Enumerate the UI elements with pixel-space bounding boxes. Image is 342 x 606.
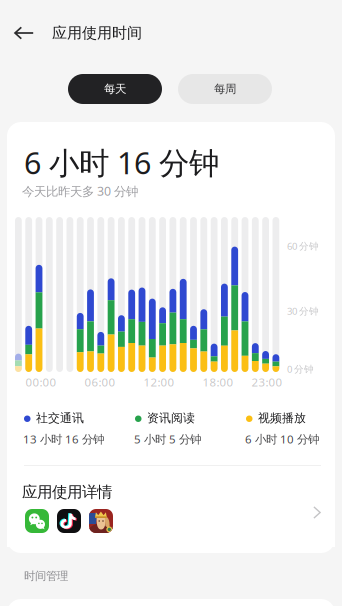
staticText: 社交通讯 — [36, 410, 84, 425]
staticText: 60 分钟 — [287, 239, 319, 253]
staticText: 应用使用时间 — [52, 23, 142, 42]
staticText: 00:00 — [25, 374, 56, 390]
staticText: 应用使用详情 — [22, 482, 112, 502]
staticText: 18:00 — [202, 374, 233, 390]
staticText: 23:00 — [251, 374, 282, 390]
staticText: 0 分钟 — [287, 362, 314, 376]
staticText: 视频播放 — [258, 410, 306, 425]
staticText: 6 小时 10 分钟 — [245, 431, 319, 447]
staticText: 13 小时 16 分钟 — [23, 431, 104, 447]
button[interactable]: 每天 — [68, 74, 162, 104]
button[interactable]: Back — [5, 14, 43, 52]
staticText: 5 小时 5 分钟 — [134, 431, 201, 447]
staticText: 6 小时 16 分钟 — [24, 142, 219, 183]
staticText: 每天 — [104, 82, 126, 96]
button[interactable]: 每周 — [178, 74, 272, 104]
staticText: 30 分钟 — [287, 304, 319, 318]
staticText: 今天比昨天多 30 分钟 — [22, 183, 138, 199]
staticText: 时间管理 — [24, 569, 68, 583]
staticText: 资讯阅读 — [147, 410, 195, 425]
staticText: 每周 — [214, 82, 236, 96]
staticText: 12:00 — [143, 374, 174, 390]
button[interactable]: 应用使用详情 — [7, 477, 335, 547]
staticText: 06:00 — [84, 374, 115, 390]
